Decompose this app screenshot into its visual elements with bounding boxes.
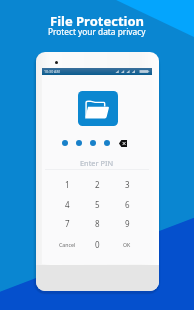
button[interactable]: Backspace bbox=[119, 140, 127, 147]
staticText: 1 bbox=[65, 179, 70, 190]
button[interactable]: 2 bbox=[82, 174, 112, 194]
button[interactable]: 5 bbox=[82, 194, 112, 214]
button[interactable]: Cancel bbox=[52, 234, 82, 254]
staticText: 5 bbox=[95, 199, 100, 210]
staticText: 4 bbox=[65, 199, 70, 210]
button[interactable]: 9 bbox=[112, 213, 142, 233]
button[interactable]: 1 bbox=[52, 174, 82, 194]
staticText: Protect your data privacy bbox=[48, 26, 146, 37]
staticText: 9 bbox=[125, 218, 130, 229]
button[interactable]: 8 bbox=[82, 213, 112, 233]
button[interactable]: 3 bbox=[112, 174, 142, 194]
staticText: 8 bbox=[95, 218, 100, 229]
staticText: 6 bbox=[125, 199, 130, 210]
button[interactable]: 7 bbox=[52, 213, 82, 233]
staticText: 2 bbox=[95, 179, 100, 190]
button[interactable]: 4 bbox=[52, 194, 82, 214]
button[interactable]: 0 bbox=[82, 234, 112, 254]
staticText: 3 bbox=[125, 179, 130, 190]
button[interactable]: 6 bbox=[112, 194, 142, 214]
staticText: 10:30 AM bbox=[44, 69, 60, 74]
staticText: 0 bbox=[95, 239, 100, 250]
staticText: Cancel bbox=[59, 241, 76, 248]
staticText: OK bbox=[123, 241, 131, 248]
button[interactable]: Open folder bbox=[78, 91, 118, 126]
staticText: Enter PIN bbox=[80, 158, 114, 168]
staticText: File Protection bbox=[50, 12, 145, 30]
staticText: 7 bbox=[65, 218, 70, 229]
button[interactable]: OK bbox=[112, 234, 142, 254]
